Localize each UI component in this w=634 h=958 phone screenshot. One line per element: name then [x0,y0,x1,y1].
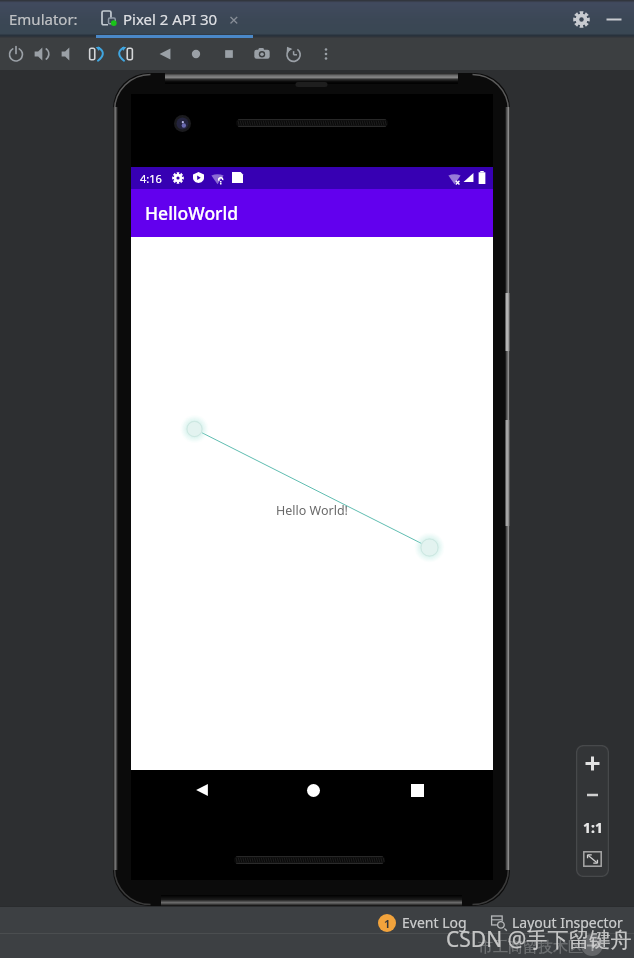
button[interactable]: Pixel 2 API 30 [96,0,253,38]
button[interactable]: More [318,46,334,62]
staticText: Pixel 2 API 30 [123,9,218,29]
button[interactable]: Zoom in [576,747,609,779]
button[interactable]: Screenshot [254,46,270,62]
button[interactable]: Rotate right [117,46,133,62]
button[interactable]: Volume down [61,46,77,62]
staticText: × [229,8,239,31]
staticText: Event Log [402,913,467,932]
staticText: 1:1 [583,818,603,837]
button[interactable]: Minimize [602,7,626,31]
staticText: CSDN @手下留键舟 [446,925,632,954]
staticText: Hello World! [276,502,348,519]
button[interactable]: Settings [569,7,593,31]
staticText: 1 [384,916,391,931]
button[interactable]: Zoom out [576,779,609,811]
staticText: 4:16 [140,171,162,186]
button[interactable]: Event Log [378,913,467,932]
button[interactable]: History [285,46,301,62]
staticText: HelloWorld [145,201,239,225]
button[interactable]: Back [187,775,217,805]
button[interactable]: Power [8,46,24,62]
button[interactable]: Home [188,46,204,62]
button[interactable]: Fit to window [576,843,609,875]
button[interactable]: Layout Inspector [491,913,623,932]
button[interactable]: Volume up [34,46,50,62]
button[interactable]: Actual size [576,811,609,843]
staticText: 市工商留技术区 [478,938,583,957]
button[interactable]: Recents [402,775,432,805]
button[interactable]: Home [298,775,328,805]
button[interactable]: Back [157,46,173,62]
button[interactable]: Rotate left [89,46,105,62]
staticText: Emulator: [9,9,78,29]
button[interactable]: Overview [221,46,237,62]
staticText: Layout Inspector [512,913,623,932]
